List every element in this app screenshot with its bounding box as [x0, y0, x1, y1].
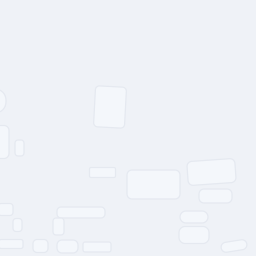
button[interactable]: Tag [179, 226, 209, 243]
button[interactable]: Secondary card [187, 160, 235, 184]
button[interactable]: Tag [180, 211, 208, 223]
button[interactable]: Featured card [94, 86, 125, 127]
button[interactable]: Detail row [199, 189, 232, 203]
button[interactable]: Primary card [127, 170, 180, 199]
button[interactable]: Progress row [57, 207, 105, 218]
